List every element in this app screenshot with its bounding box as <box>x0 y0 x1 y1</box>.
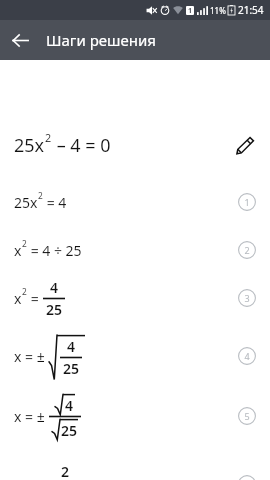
button[interactable]: 25x <box>0 178 270 226</box>
staticText: 4 <box>50 278 59 297</box>
staticText: 2 <box>38 190 43 201</box>
staticText: = 4 ÷ 25 <box>27 241 82 260</box>
staticText: 21:54 <box>238 3 264 17</box>
staticText: = 4 <box>43 193 67 212</box>
staticText: 25x <box>14 133 45 158</box>
staticText: 2 <box>45 130 52 145</box>
staticText: 4 <box>67 337 76 356</box>
staticText: 2 <box>22 238 27 249</box>
staticText: 4 <box>244 350 250 362</box>
staticText: – 4 = 0 <box>52 133 111 158</box>
staticText: 5 <box>244 410 250 422</box>
staticText: 25 <box>61 421 78 440</box>
staticText: 2 <box>22 286 27 297</box>
staticText: 2 <box>244 244 250 256</box>
staticText: 1 <box>244 196 250 208</box>
button[interactable]: x <box>0 226 270 274</box>
staticText: = <box>27 289 43 308</box>
staticText: 2 <box>61 462 70 480</box>
staticText: 1 <box>188 6 193 15</box>
staticText: 25 <box>63 359 80 378</box>
staticText: x = ± <box>14 407 49 426</box>
staticText: 25 <box>46 300 63 319</box>
staticText: 4 <box>65 396 74 415</box>
staticText: 3 <box>244 292 250 304</box>
staticText: x <box>14 289 22 308</box>
staticText: 25x <box>14 193 38 212</box>
staticText: x <box>14 241 22 260</box>
button[interactable]: Edit equation <box>230 130 260 160</box>
staticText: x = ± <box>14 347 49 366</box>
staticText: Шаги решения <box>46 30 156 50</box>
staticText: 11% <box>210 5 226 16</box>
button[interactable]: x = ± <box>0 332 270 380</box>
button[interactable]: Back <box>0 20 40 60</box>
button[interactable]: x = ± <box>0 392 270 440</box>
button[interactable]: x = ± <box>0 460 270 480</box>
button[interactable]: x <box>0 274 270 322</box>
